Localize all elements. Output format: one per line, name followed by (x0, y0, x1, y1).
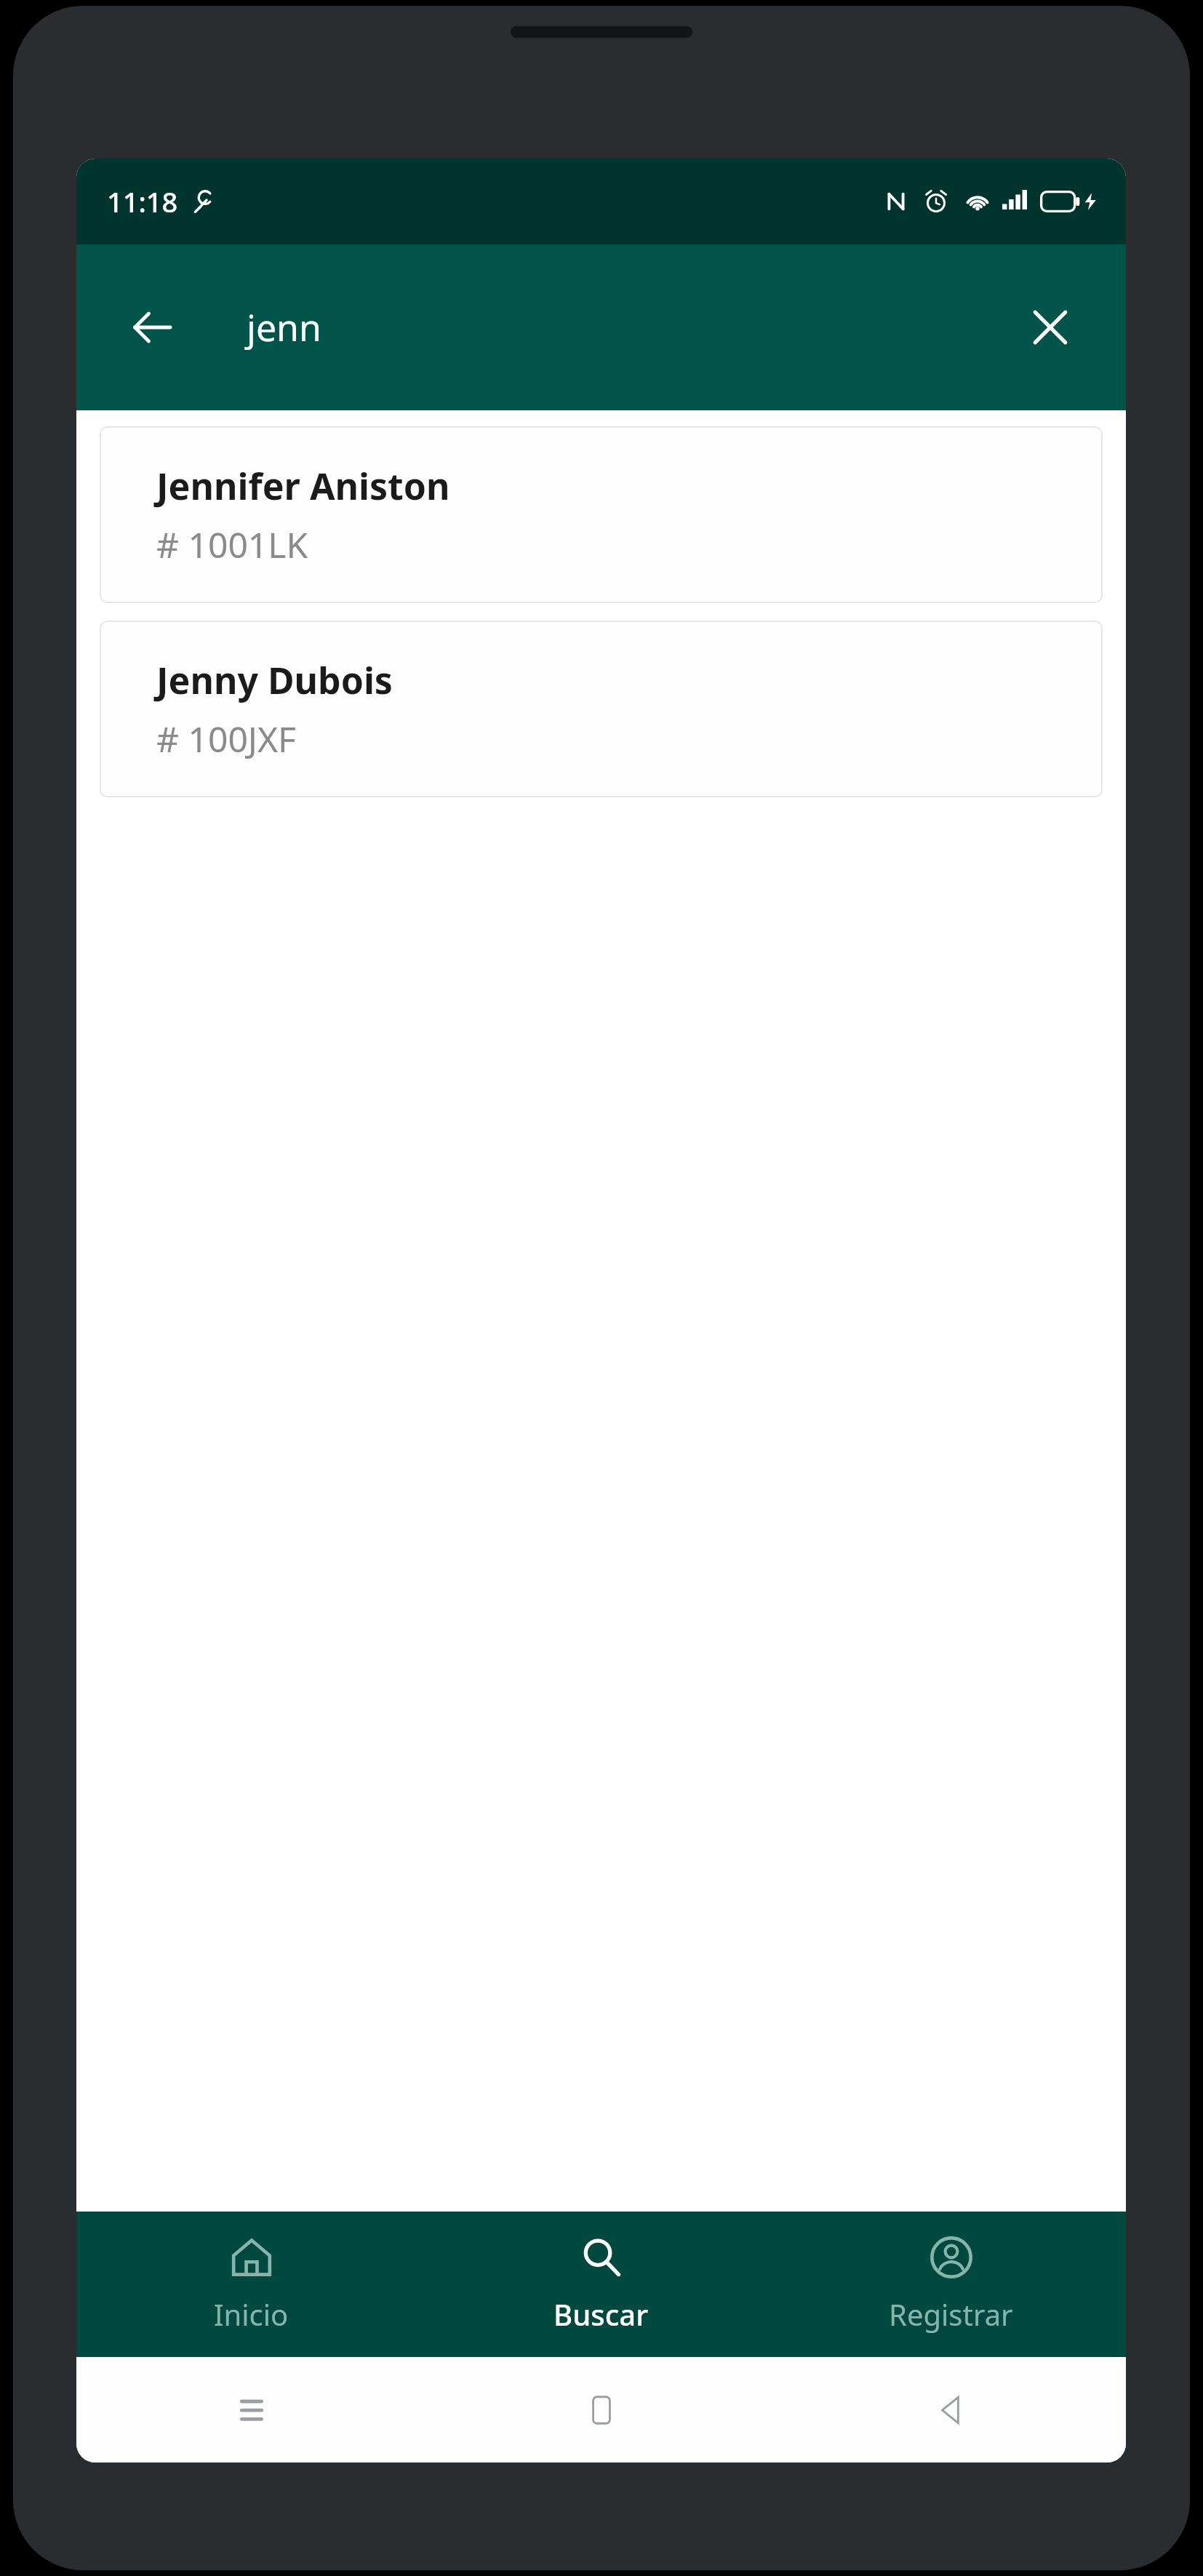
button[interactable]: Buscar (426, 2212, 776, 2357)
staticText: Inicio (214, 2294, 289, 2334)
button[interactable]: Back (776, 2357, 1126, 2463)
staticText: 11:18 (107, 183, 178, 220)
staticText: jenn (247, 303, 1015, 352)
button[interactable]: Back (117, 292, 187, 362)
button[interactable]: Jennifer Aniston (100, 426, 1103, 603)
button[interactable]: Jenny Dubois (100, 621, 1103, 797)
button[interactable]: Inicio (76, 2212, 426, 2357)
button[interactable]: Home (426, 2357, 776, 2463)
button[interactable]: Clear search (1015, 292, 1085, 362)
staticText: Jennifer Aniston (156, 461, 450, 511)
staticText: Buscar (553, 2294, 649, 2334)
staticText: Jenny Dubois (156, 655, 393, 705)
staticText: # 1001LK (156, 521, 308, 568)
staticText: Registrar (889, 2294, 1013, 2334)
button[interactable]: Registrar (776, 2212, 1126, 2357)
staticText: # 100JXF (156, 715, 297, 762)
button[interactable]: Recent apps (76, 2357, 426, 2463)
